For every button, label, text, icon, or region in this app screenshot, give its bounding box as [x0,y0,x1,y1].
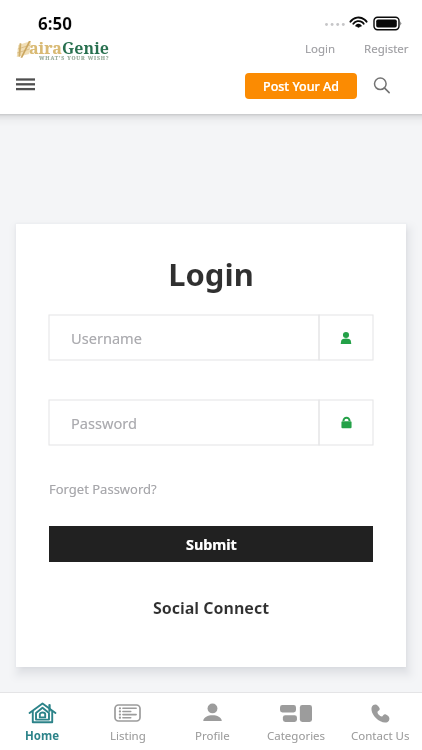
button[interactable]: Password [49,400,319,445]
staticText: Login [16,253,406,295]
staticText: 6:50 [38,12,72,35]
button[interactable]: Home [0,693,85,750]
staticText: Home [25,728,60,744]
staticText: Listing [110,728,146,744]
button[interactable]: Menu [6,68,44,100]
staticText: WHAT'S YOUR WISH? [39,54,110,61]
staticText: Genie [62,37,109,59]
button[interactable]: Username [49,315,319,360]
staticText: Post Your Ad [263,78,340,95]
button[interactable]: Listing [85,693,170,750]
staticText: aira [29,37,62,59]
staticText: Forget Password? [49,480,157,498]
button[interactable]: Register [360,37,413,61]
button[interactable]: User [319,315,373,360]
staticText: Submit [186,535,237,554]
staticText: Categories [267,728,326,744]
button[interactable]: Profile [170,693,254,750]
button[interactable]: Submit [49,526,373,562]
button[interactable]: Post Your Ad [245,73,357,99]
staticText: Profile [195,728,230,744]
staticText: Username [71,328,142,348]
staticText: Register [364,41,409,57]
button[interactable]: Password [319,400,373,445]
button[interactable]: Contact Us [338,693,422,750]
staticText: Social Connect [16,597,406,619]
button[interactable]: Search [365,69,397,101]
button[interactable]: Forget Password? [49,477,157,501]
staticText: Login [305,41,336,57]
button[interactable]: Categories [254,693,338,750]
staticText: Contact Us [351,728,410,744]
staticText: Password [71,413,138,433]
button[interactable]: Login [300,37,340,61]
